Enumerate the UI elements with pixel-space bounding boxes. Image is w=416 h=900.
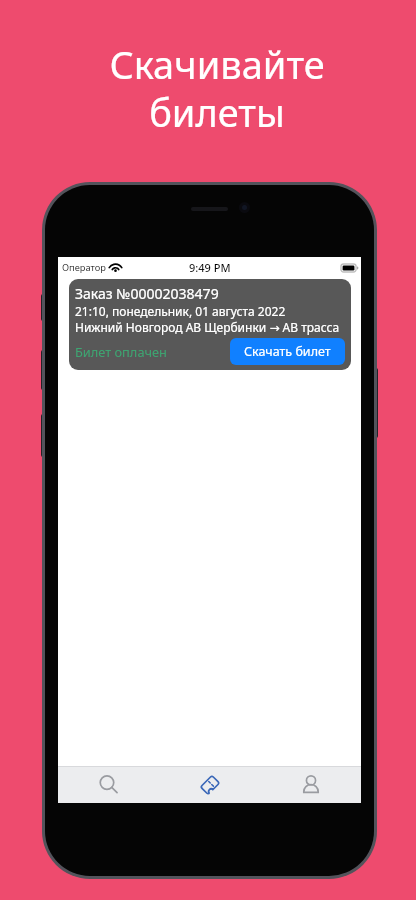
staticText: Скачать билет bbox=[244, 343, 331, 360]
staticText: Оператор bbox=[62, 261, 106, 274]
staticText: 21:10, понедельник, 01 августа 2022 bbox=[75, 303, 286, 319]
staticText: Билет оплачен bbox=[75, 343, 167, 360]
staticText: Нижний Новгород АВ Щербинки → АВ трасса bbox=[75, 319, 340, 335]
staticText: 9:49 PM bbox=[189, 260, 231, 275]
button[interactable]: Заказ №00002038479 bbox=[69, 279, 351, 370]
button[interactable]: Tickets bbox=[159, 766, 260, 803]
staticText: Заказ №00002038479 bbox=[75, 284, 219, 303]
button[interactable]: Search bbox=[58, 766, 159, 803]
button[interactable]: Profile bbox=[260, 766, 361, 803]
staticText: Скачивайте билеты bbox=[109, 38, 325, 138]
button[interactable]: Скачать билет bbox=[230, 338, 345, 365]
